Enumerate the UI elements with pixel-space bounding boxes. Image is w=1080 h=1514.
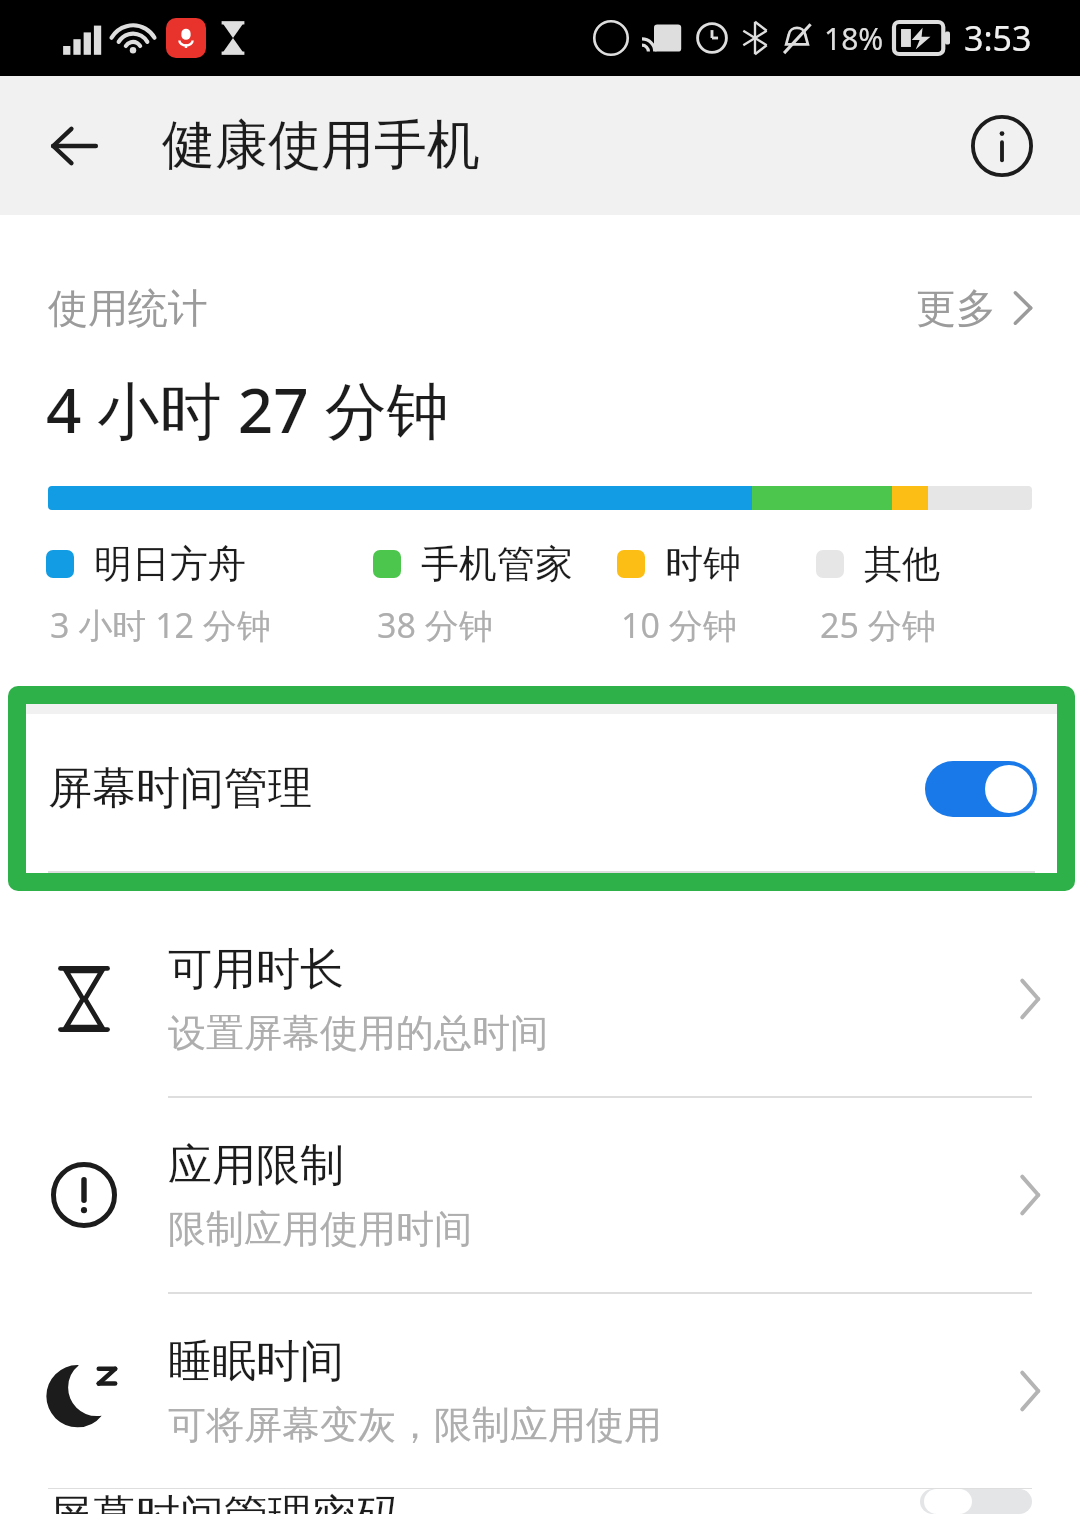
staticText: 时钟 — [665, 540, 741, 588]
button[interactable]: 屏幕时间管理 — [26, 704, 1057, 873]
button[interactable]: 睡眠时间 — [0, 1294, 1080, 1488]
button[interactable]: Info — [962, 106, 1042, 186]
staticText: 应用限制 — [168, 1138, 344, 1193]
staticText: 屏幕时间管理 — [48, 761, 312, 816]
staticText: 3:53 — [964, 15, 1032, 61]
staticText: 睡眠时间 — [168, 1334, 344, 1389]
button[interactable]: 屏幕时间管理密码 — [0, 1489, 1080, 1514]
staticText: 可将屏幕变灰，限制应用使用 — [168, 1401, 662, 1449]
staticText: 4 小时 27 分钟 — [46, 367, 449, 452]
staticText: 可用时长 — [168, 942, 344, 997]
staticText: 限制应用使用时间 — [168, 1205, 472, 1253]
button[interactable]: Back — [34, 106, 114, 186]
staticText: 18% — [824, 18, 884, 59]
button[interactable]: 应用限制 — [0, 1098, 1080, 1294]
staticText: 25 分钟 — [820, 602, 936, 648]
staticText: 健康使用手机 — [162, 112, 480, 179]
staticText: 屏幕时间管理密码 — [48, 1489, 400, 1514]
button[interactable]: Toggle off — [920, 1489, 1032, 1514]
staticText: 10 分钟 — [621, 602, 737, 648]
button[interactable]: Toggle on — [925, 761, 1037, 817]
staticText: 更多 — [916, 283, 996, 333]
staticText: 3 小时 12 分钟 — [50, 602, 271, 648]
button[interactable]: 更多 — [910, 277, 1040, 339]
staticText: 设置屏幕使用的总时间 — [168, 1009, 548, 1057]
staticText: 明日方舟 — [94, 540, 246, 588]
staticText: 使用统计 — [48, 283, 208, 333]
staticText: 其他 — [864, 540, 940, 588]
button[interactable]: 可用时长 — [0, 902, 1080, 1098]
staticText: 38 分钟 — [377, 602, 493, 648]
staticText: 手机管家 — [421, 540, 573, 588]
